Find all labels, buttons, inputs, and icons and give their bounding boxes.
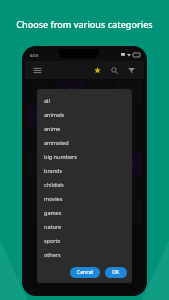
button[interactable]: Search	[108, 64, 121, 77]
button[interactable]: big numbers	[37, 149, 132, 163]
button[interactable]: anime	[37, 121, 132, 135]
button[interactable]: brands	[37, 163, 132, 177]
button[interactable]: others	[37, 247, 132, 261]
button[interactable]: all	[37, 93, 132, 107]
button[interactable]: animated	[37, 135, 132, 149]
staticText: games	[44, 209, 62, 216]
staticText: movies	[44, 195, 63, 202]
button[interactable]	[27, 81, 55, 103]
button[interactable]	[115, 81, 142, 103]
button[interactable]	[115, 105, 142, 127]
staticText: Choose from various categories	[16, 18, 153, 30]
button[interactable]	[115, 201, 142, 223]
staticText: big numbers	[44, 153, 77, 160]
button[interactable]: Menu	[31, 64, 43, 76]
button[interactable]	[27, 129, 55, 151]
button[interactable]: movies	[37, 191, 132, 205]
staticText: brands	[44, 167, 63, 174]
button[interactable]	[27, 105, 55, 127]
button[interactable]	[57, 105, 84, 127]
button[interactable]: Filter	[125, 64, 138, 77]
button[interactable]	[57, 153, 84, 175]
button[interactable]: OK	[105, 267, 127, 278]
button[interactable]: sports	[37, 233, 132, 247]
button[interactable]: Favorites	[91, 64, 104, 77]
button[interactable]: Cancel	[70, 267, 100, 278]
staticText: nature	[44, 223, 62, 230]
button[interactable]	[57, 177, 84, 199]
button[interactable]: animals	[37, 107, 132, 121]
button[interactable]: nature	[37, 219, 132, 233]
staticText: all	[44, 97, 50, 104]
button[interactable]	[57, 81, 84, 103]
button[interactable]: childish	[37, 177, 132, 191]
button[interactable]: games	[37, 205, 132, 219]
staticText: 6:03	[30, 53, 38, 58]
button[interactable]	[115, 153, 142, 175]
button[interactable]	[115, 129, 142, 151]
button[interactable]	[115, 177, 142, 199]
staticText: anime	[44, 125, 61, 132]
staticText: others	[44, 251, 61, 258]
button[interactable]	[57, 201, 84, 223]
button[interactable]	[27, 153, 55, 175]
button[interactable]	[27, 177, 55, 199]
staticText: childish	[44, 181, 64, 188]
staticText: animated	[44, 139, 69, 146]
staticText: OK	[112, 269, 120, 276]
button[interactable]	[57, 129, 84, 151]
button[interactable]	[86, 81, 113, 103]
staticText: animals	[44, 111, 65, 118]
staticText: sports	[44, 237, 61, 244]
staticText: Cancel	[77, 269, 93, 276]
button[interactable]	[27, 201, 55, 223]
